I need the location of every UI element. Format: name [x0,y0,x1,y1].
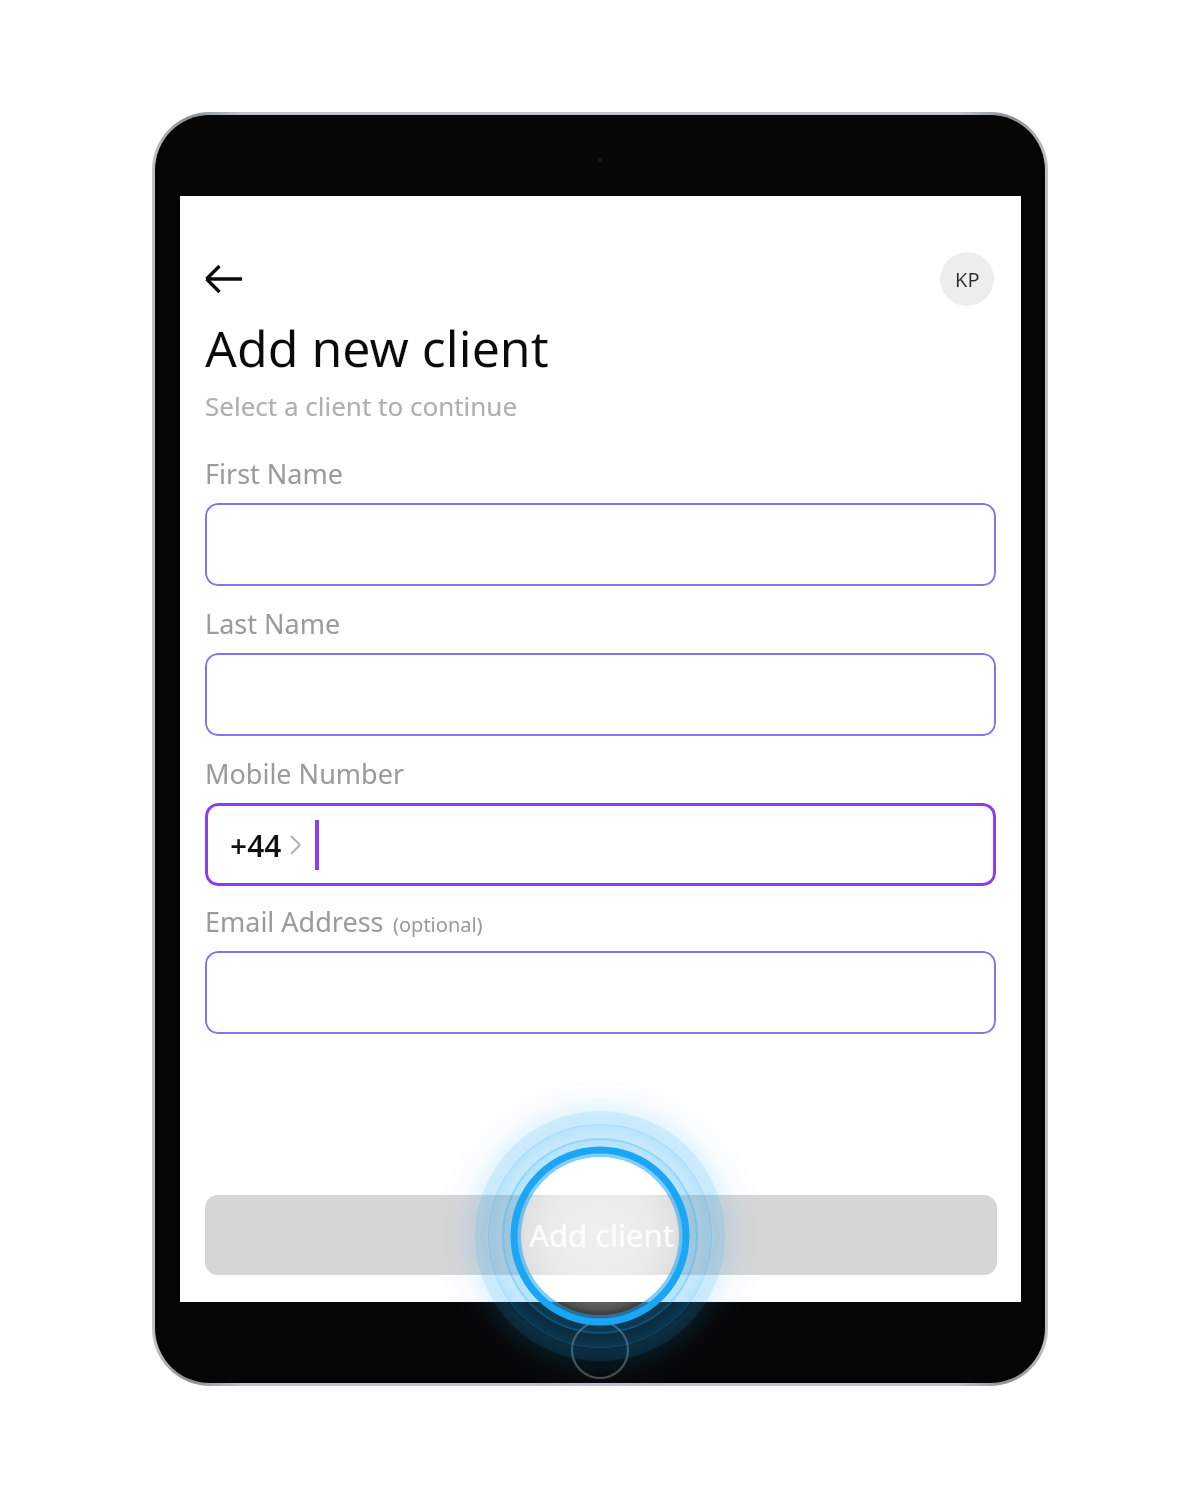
staticText: KP [955,266,980,293]
button[interactable] [205,503,996,586]
staticText: First Name [205,455,343,492]
button[interactable]: Back [205,256,251,302]
staticText: Last Name [205,605,341,642]
button[interactable] [205,951,996,1034]
staticText: Select a client to continue [205,388,518,423]
staticText: Mobile Number [205,755,405,792]
button[interactable]: Add client [205,1195,997,1275]
button[interactable]: +44 [205,803,996,886]
button[interactable] [205,653,996,736]
staticText: Email Address [205,903,384,940]
staticText: (optional) [393,911,483,938]
staticText: Add new client [205,314,549,382]
button[interactable]: Profile KP [940,252,994,306]
staticText: Add client [529,1214,674,1256]
staticText: +44 [230,825,282,866]
